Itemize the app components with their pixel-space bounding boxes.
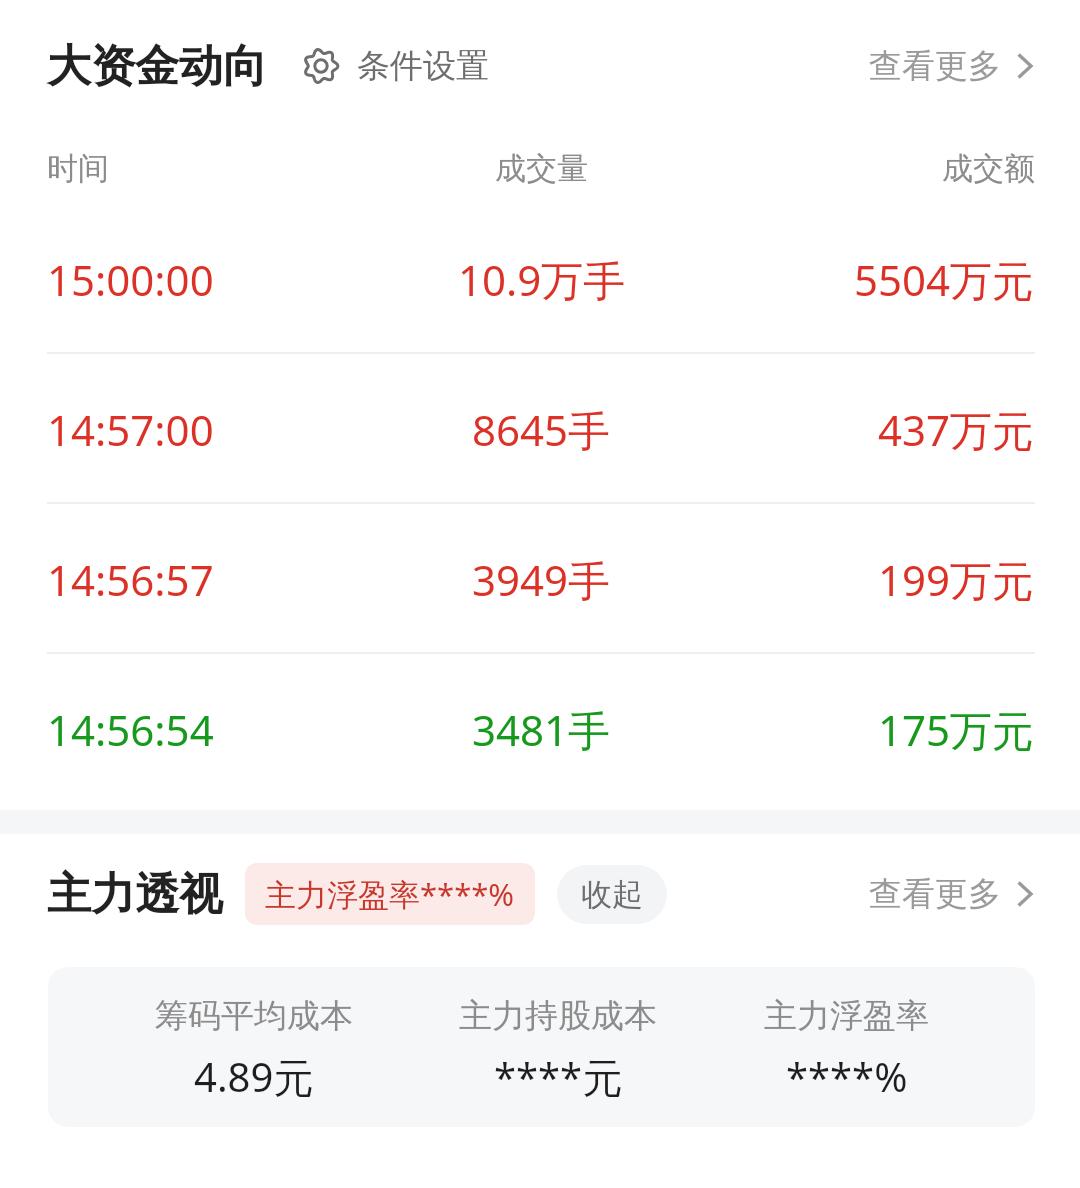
staticText: 4.89元 bbox=[194, 1049, 314, 1104]
button[interactable]: 14:57:00 bbox=[0, 354, 1080, 504]
staticText: 主力浮盈率****% bbox=[265, 873, 515, 915]
staticText: 14:56:57 bbox=[47, 551, 214, 608]
staticText: 查看更多 bbox=[869, 45, 1001, 87]
staticText: 3949手 bbox=[472, 551, 611, 608]
staticText: 条件设置 bbox=[357, 45, 489, 87]
staticText: 10.9万手 bbox=[458, 251, 626, 308]
other: 条件设置 bbox=[301, 46, 341, 86]
staticText: 时间 bbox=[47, 149, 109, 188]
button[interactable]: 查看更多 bbox=[869, 37, 1035, 95]
button[interactable]: 筹码平均成本 bbox=[48, 967, 1035, 1127]
staticText: 14:56:54 bbox=[47, 701, 214, 758]
button[interactable]: 条件设置 bbox=[301, 39, 489, 93]
staticText: 14:57:00 bbox=[47, 401, 214, 458]
staticText: 8645手 bbox=[472, 401, 611, 458]
button[interactable]: 主力浮盈率****% bbox=[245, 863, 535, 925]
staticText: 5504万元 bbox=[854, 251, 1035, 308]
staticText: 主力浮盈率 bbox=[764, 995, 929, 1037]
staticText: 成交量 bbox=[495, 149, 588, 188]
staticText: 437万元 bbox=[878, 401, 1035, 458]
staticText: 175万元 bbox=[878, 701, 1035, 758]
staticText: 主力持股成本 bbox=[459, 995, 657, 1037]
staticText: 收起 bbox=[581, 875, 643, 914]
staticText: 成交额 bbox=[942, 149, 1035, 188]
staticText: 筹码平均成本 bbox=[155, 995, 353, 1037]
staticText: 主力透视 bbox=[47, 867, 223, 922]
button[interactable]: 收起 bbox=[557, 865, 667, 924]
staticText: ****元 bbox=[494, 1049, 623, 1104]
button[interactable]: 查看更多 bbox=[869, 865, 1035, 923]
staticText: ****% bbox=[786, 1049, 908, 1103]
staticText: 3481手 bbox=[472, 701, 611, 758]
button[interactable]: 14:56:54 bbox=[0, 654, 1080, 804]
staticText: 199万元 bbox=[878, 551, 1035, 608]
staticText: 15:00:00 bbox=[47, 251, 214, 308]
staticText: 查看更多 bbox=[869, 873, 1001, 915]
staticText: 大资金动向 bbox=[47, 39, 267, 94]
button[interactable]: 14:56:57 bbox=[0, 504, 1080, 654]
button[interactable]: 15:00:00 bbox=[0, 204, 1080, 354]
